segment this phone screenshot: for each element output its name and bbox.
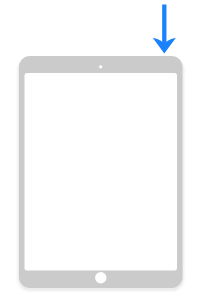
other: iPad with arrow pointing to top button [0, 0, 202, 300]
